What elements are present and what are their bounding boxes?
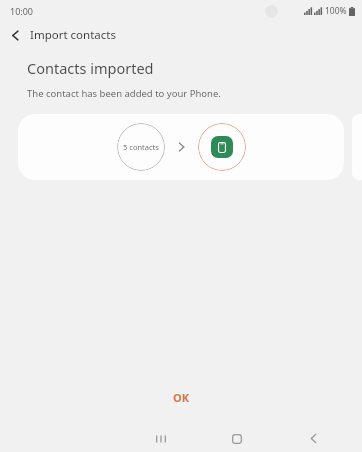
staticText: 10:00 xyxy=(10,5,34,17)
staticText: 100% xyxy=(325,5,347,17)
button[interactable]: Recent apps xyxy=(144,425,178,452)
button[interactable]: Home xyxy=(220,425,254,452)
staticText: Contacts imported xyxy=(27,58,154,78)
button[interactable]: OK xyxy=(147,383,216,412)
button[interactable]: Back xyxy=(0,22,30,48)
button[interactable]: 5 contacts xyxy=(18,114,344,180)
staticText: OK xyxy=(173,390,190,405)
staticText: Import contacts xyxy=(30,27,116,43)
button[interactable]: Back xyxy=(296,425,330,452)
staticText: 5 contacts xyxy=(123,142,159,152)
staticText: The contact has been added to your Phone… xyxy=(27,87,221,100)
